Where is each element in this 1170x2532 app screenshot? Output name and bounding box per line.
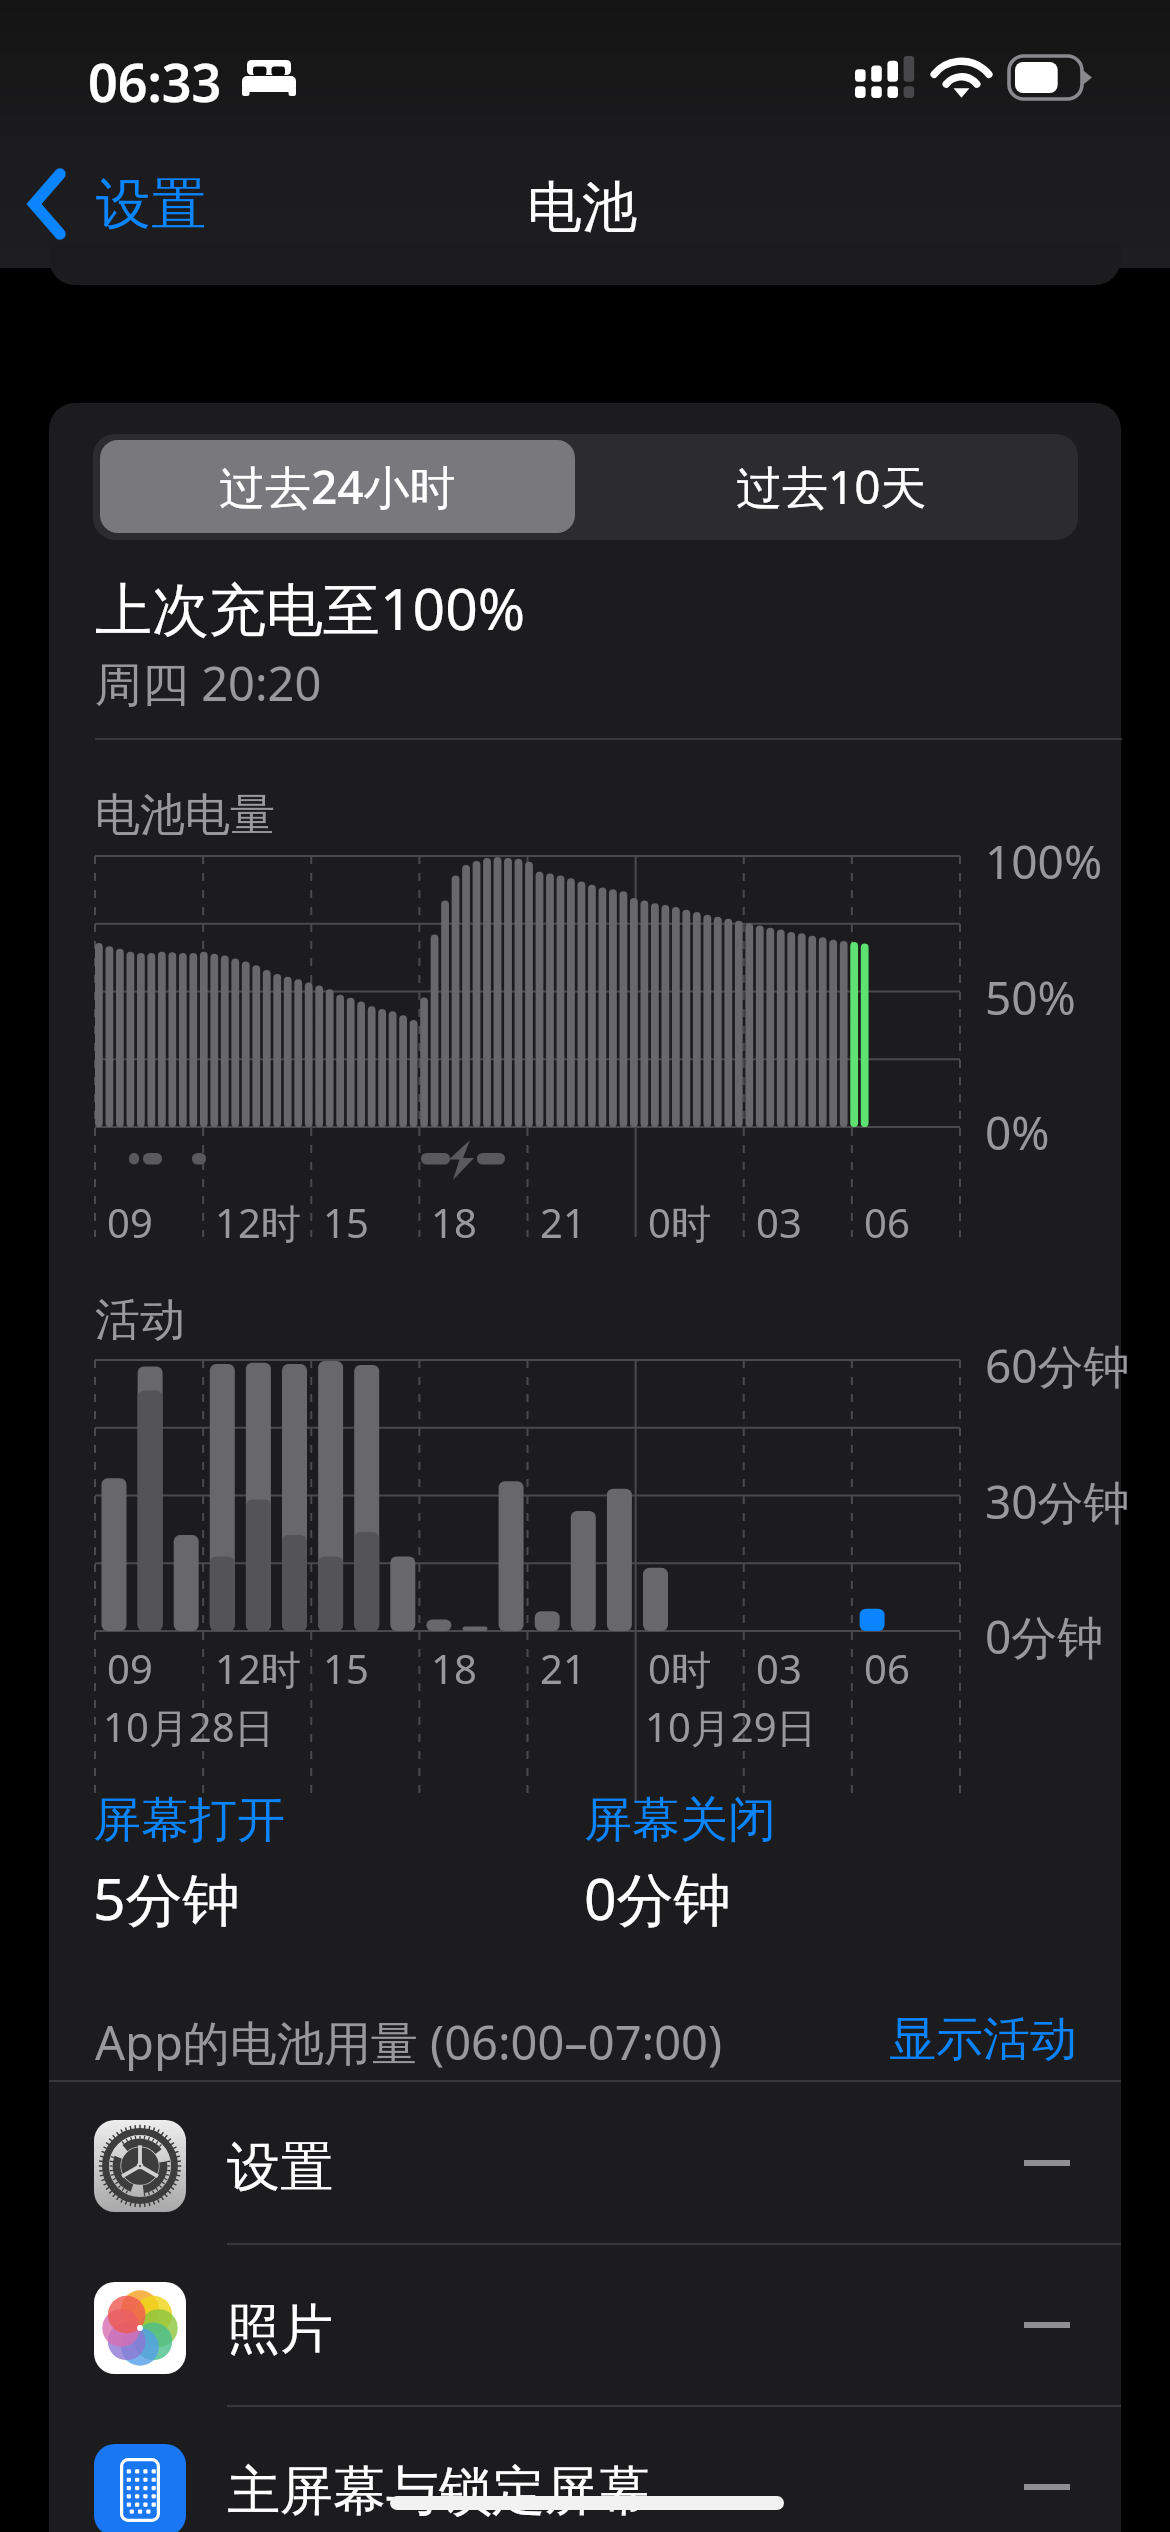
staticText: 过去24小时 — [219, 455, 456, 518]
staticText: 06 — [864, 1641, 910, 1695]
staticText: 03 — [756, 1641, 802, 1695]
staticText: 0分钟 — [985, 1605, 1104, 1668]
staticText: 屏幕关闭 — [584, 1790, 776, 1850]
staticText: 活动 — [95, 1292, 185, 1349]
staticText: 0时 — [648, 1641, 711, 1696]
staticText: 0% — [985, 1101, 1050, 1164]
staticText: 过去10天 — [736, 455, 927, 518]
staticText: 10月28日 — [103, 1699, 275, 1754]
button[interactable]: 设置 — [12, 154, 206, 254]
staticText: App的电池用量 (06:00–07:00) — [95, 2010, 723, 2074]
staticText: 100% — [985, 830, 1103, 893]
staticText: 10月29日 — [645, 1699, 817, 1754]
button[interactable]: 过去10天 — [585, 434, 1078, 538]
staticText: 18 — [431, 1641, 477, 1695]
staticText: 设置 — [96, 170, 206, 239]
staticText: 0时 — [648, 1195, 711, 1250]
button[interactable]: 设置 — [49, 2082, 1121, 2244]
staticText: 上次充电至100% — [95, 569, 526, 647]
staticText: 显示活动 — [889, 2010, 1077, 2069]
button[interactable]: 显示活动 — [889, 2010, 1077, 2069]
staticText: 06 — [864, 1195, 910, 1249]
staticText: 0分钟 — [584, 1859, 731, 1937]
staticText: 30分钟 — [985, 1470, 1130, 1533]
staticText: 21 — [540, 1641, 586, 1695]
staticText: 12时 — [215, 1641, 301, 1696]
button[interactable]: 主屏幕与锁定屏幕 — [49, 2406, 1121, 2532]
staticText: 设置 — [227, 2134, 333, 2201]
staticText: 06:33 — [88, 46, 222, 117]
staticText: 周四 20:20 — [95, 651, 322, 715]
staticText: 12时 — [215, 1195, 301, 1250]
staticText: 15 — [323, 1195, 369, 1249]
staticText: 电池电量 — [95, 787, 275, 844]
staticText: 屏幕打开 — [93, 1790, 285, 1850]
staticText: 09 — [107, 1641, 153, 1695]
staticText: 21 — [540, 1195, 586, 1249]
staticText: 15 — [323, 1641, 369, 1695]
staticText: 18 — [431, 1195, 477, 1249]
staticText: 60分钟 — [985, 1334, 1130, 1397]
button[interactable]: 照片 — [49, 2244, 1121, 2406]
staticText: 09 — [107, 1195, 153, 1249]
button[interactable]: 过去24小时 — [100, 440, 575, 533]
staticText: 50% — [985, 966, 1076, 1029]
staticText: 主屏幕与锁定屏幕 — [227, 2458, 651, 2525]
staticText: 5分钟 — [93, 1859, 240, 1937]
staticText: 03 — [756, 1195, 802, 1249]
staticText: 电池 — [527, 173, 637, 242]
staticText: 照片 — [227, 2296, 333, 2363]
